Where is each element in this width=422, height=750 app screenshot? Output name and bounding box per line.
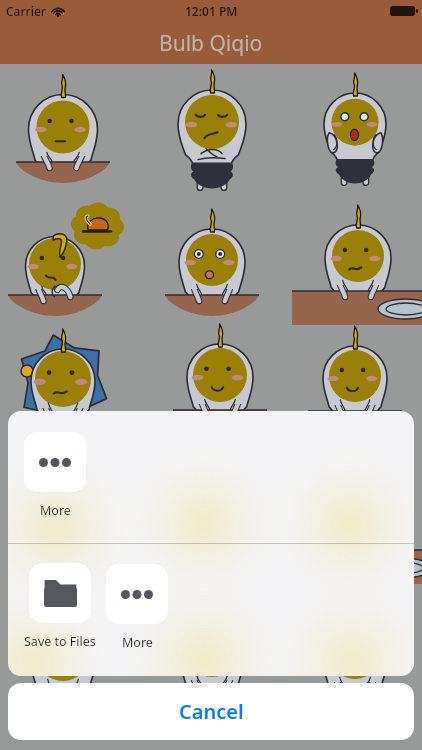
other: Wi-Fi xyxy=(51,6,65,17)
staticText: More xyxy=(40,502,71,519)
button[interactable]: More xyxy=(106,564,168,651)
other: More xyxy=(121,590,153,599)
staticText: Bulb Qiqio xyxy=(159,29,263,58)
button[interactable]: More xyxy=(24,432,86,519)
other: Battery xyxy=(390,6,418,16)
other: Save to Files xyxy=(44,580,77,607)
staticText: More xyxy=(122,634,153,651)
other: More xyxy=(39,458,71,467)
staticText: Carrier xyxy=(6,3,46,19)
staticText: Cancel xyxy=(179,698,244,725)
button[interactable]: Save to Files xyxy=(24,563,96,650)
staticText: Save to Files xyxy=(24,633,96,650)
button[interactable]: Cancel xyxy=(8,683,414,740)
staticText: 12:01 PM xyxy=(185,3,238,19)
